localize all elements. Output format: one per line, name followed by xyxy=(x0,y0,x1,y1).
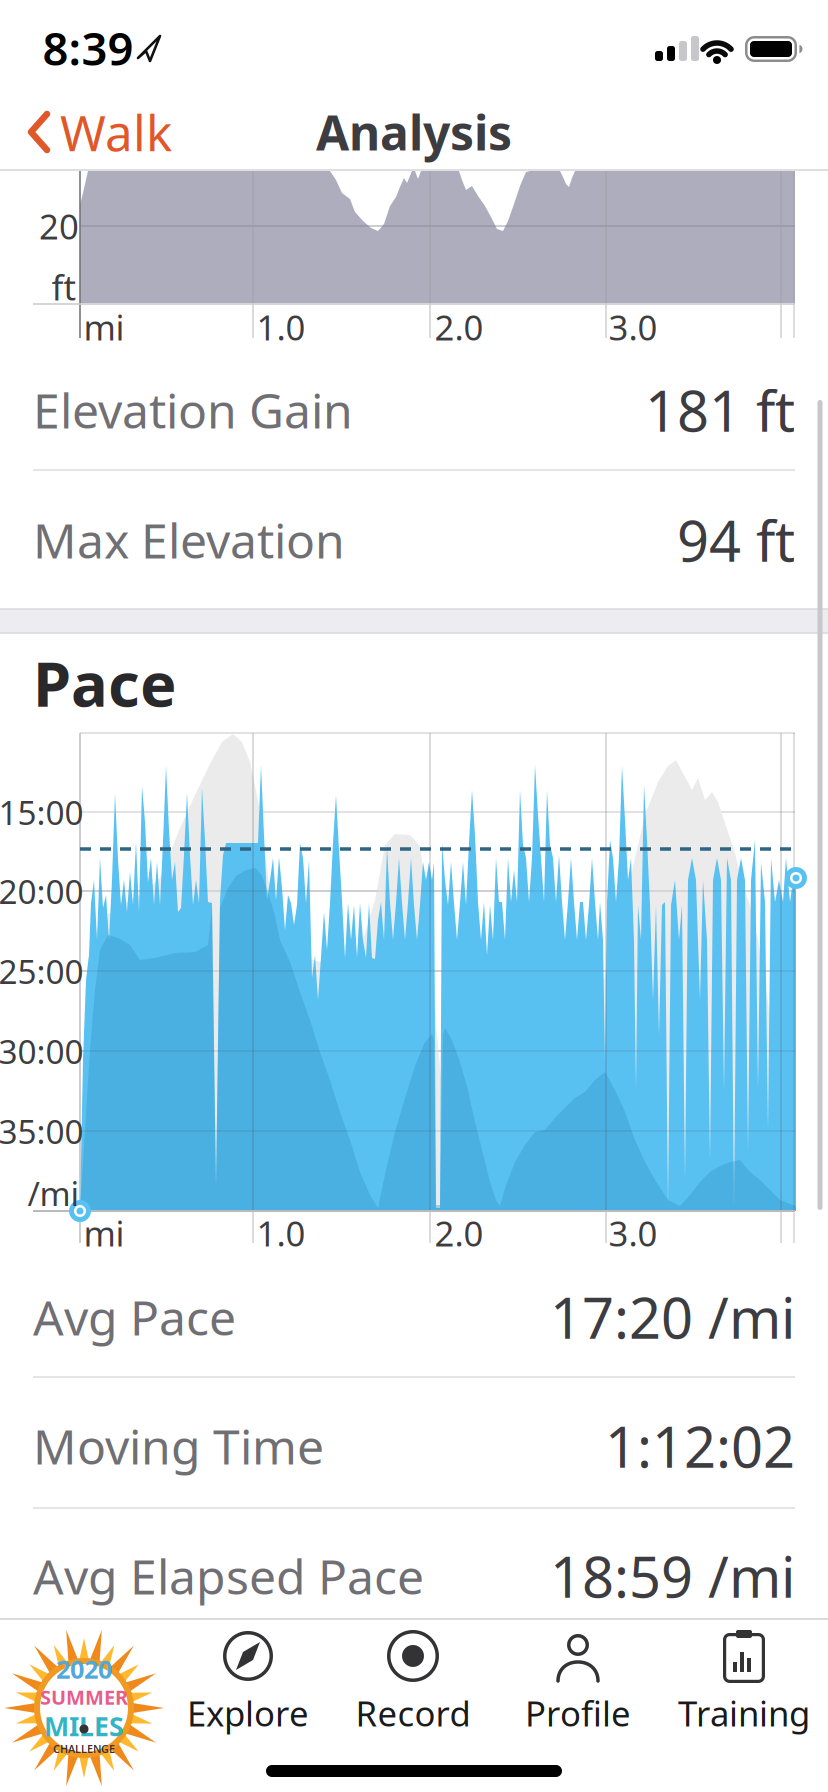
staticText: mi xyxy=(83,1210,124,1256)
staticText: SUMMER xyxy=(40,1684,128,1710)
staticText: 1.0 xyxy=(256,1210,305,1256)
staticText: 25:00 xyxy=(0,949,83,993)
staticText: 18:59 /mi xyxy=(550,1539,795,1613)
button[interactable]: Training xyxy=(669,1628,819,1736)
staticText: Avg Elapsed Pace xyxy=(33,1544,424,1608)
staticText: 94 ft xyxy=(677,503,795,577)
button[interactable]: Profile xyxy=(503,1628,653,1736)
staticText: 2020 xyxy=(56,1652,112,1686)
staticText: 30:00 xyxy=(0,1029,83,1073)
staticText: Moving Time xyxy=(33,1414,324,1478)
staticText: 20:00 xyxy=(0,869,83,913)
staticText: Max Elevation xyxy=(33,508,345,572)
staticText: Record xyxy=(355,1690,470,1736)
staticText: 1:12:02 xyxy=(605,1409,795,1483)
button[interactable]: 2020 Summer Miles Challenge xyxy=(4,1628,164,1788)
staticText: 8:39 xyxy=(42,18,133,78)
staticText: Profile xyxy=(525,1690,631,1736)
staticText: Analysis xyxy=(316,100,512,164)
staticText: 2.0 xyxy=(434,304,483,350)
staticText: 2.0 xyxy=(434,1210,483,1256)
button[interactable]: Explore xyxy=(173,1628,323,1736)
staticText: 17:20 /mi xyxy=(550,1280,795,1354)
staticText: MILES xyxy=(44,1708,124,1744)
staticText: Avg Pace xyxy=(33,1285,236,1349)
staticText: Walk xyxy=(60,99,172,165)
staticText: mi xyxy=(83,304,124,350)
staticText: 3.0 xyxy=(608,1210,657,1256)
staticText: Explore xyxy=(187,1690,309,1736)
staticText: Training xyxy=(678,1690,810,1736)
staticText: ft xyxy=(51,264,76,310)
staticText: 35:00 xyxy=(0,1109,83,1153)
staticText: /mi xyxy=(27,1171,79,1215)
staticText: 3.0 xyxy=(608,304,657,350)
staticText: 181 ft xyxy=(645,373,795,447)
staticText: CHALLENGE xyxy=(53,1742,115,1756)
button[interactable]: Back xyxy=(28,99,172,165)
staticText: 20 xyxy=(39,203,79,249)
staticText: 15:00 xyxy=(0,790,83,834)
staticText: 1.0 xyxy=(256,304,305,350)
staticText: Pace xyxy=(33,642,177,724)
button[interactable]: Record xyxy=(338,1628,488,1736)
staticText: Elevation Gain xyxy=(33,378,353,442)
